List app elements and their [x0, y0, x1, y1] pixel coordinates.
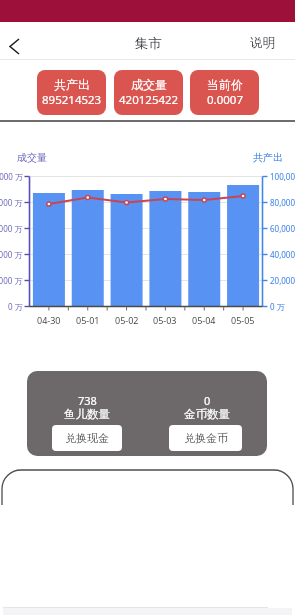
staticText: 共产出	[54, 77, 90, 92]
staticText: 10000 万	[0, 171, 23, 182]
staticText: 420125422	[119, 92, 179, 108]
staticText: 0 万	[8, 301, 23, 312]
staticText: 05-05	[231, 314, 255, 326]
staticText: 集市	[135, 35, 162, 52]
staticText: 2000 万	[0, 275, 23, 286]
staticText: 0.0007	[207, 92, 243, 108]
staticText: 0	[204, 393, 211, 408]
button[interactable]: 当前价	[190, 70, 259, 115]
staticText: 成交量	[17, 151, 47, 164]
button[interactable]: 兑换金币	[169, 425, 242, 451]
staticText: 兑换现金	[65, 431, 109, 445]
staticText: 说明	[250, 35, 275, 51]
staticText: 60,000 万	[270, 223, 295, 234]
staticText: 兑换金币	[184, 431, 228, 445]
button[interactable]: 成交量	[114, 70, 183, 115]
staticText: 40,000 万	[270, 249, 295, 260]
staticText: 738	[78, 393, 97, 408]
button[interactable]: 兑换现金	[52, 425, 122, 451]
staticText: 05-01	[76, 314, 100, 326]
staticText: 100,000 万	[270, 171, 295, 182]
staticText: 20,000 万	[270, 275, 295, 286]
staticText: 成交量	[131, 77, 167, 92]
staticText: 6000 万	[0, 223, 23, 234]
staticText: 鱼儿数量	[64, 407, 110, 421]
staticText: 80,000 万	[270, 197, 295, 208]
button[interactable]: 共产出	[37, 70, 106, 115]
staticText: 04-30	[37, 314, 61, 326]
staticText: 05-02	[115, 314, 139, 326]
staticText: 当前价	[207, 77, 243, 92]
staticText: 0 万	[270, 301, 285, 312]
staticText: 05-03	[153, 314, 177, 326]
staticText: 金币数量	[184, 407, 230, 421]
staticText: 8000 万	[0, 197, 23, 208]
staticText: 05-04	[192, 314, 216, 326]
staticText: 4000 万	[0, 249, 23, 260]
staticText: 895214523	[42, 92, 102, 108]
staticText: 共产出	[253, 151, 283, 164]
button[interactable]: 说明	[232, 33, 292, 53]
button[interactable]	[0, 32, 28, 60]
